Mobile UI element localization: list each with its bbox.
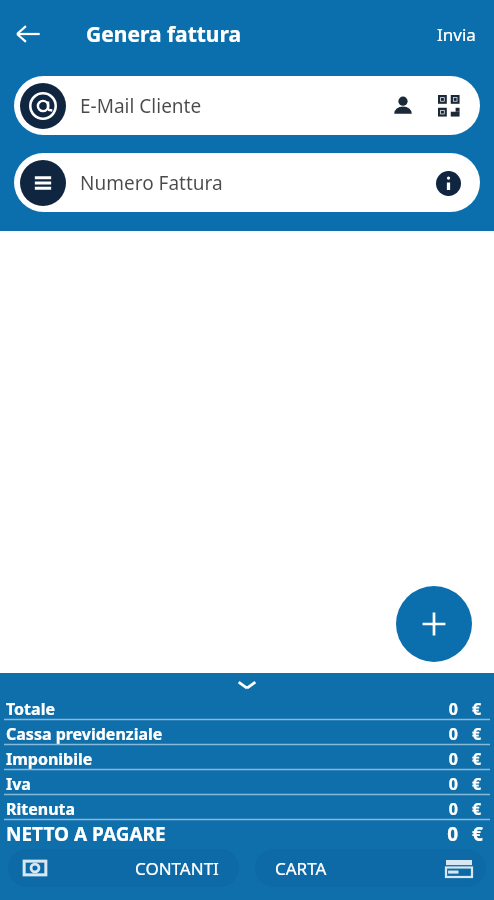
staticText: CONTANTI <box>135 857 219 880</box>
staticText: 0 <box>448 723 458 745</box>
button[interactable]: Add item <box>396 586 472 662</box>
staticText: € <box>472 773 490 795</box>
staticText: € <box>472 748 490 770</box>
staticText: 0 <box>448 748 458 770</box>
button[interactable]: CONTANTI <box>8 849 239 887</box>
staticText: Numero Fattura <box>80 170 223 196</box>
staticText: 0 <box>448 798 458 820</box>
button[interactable]: Numero Fattura <box>14 153 480 212</box>
staticText: Cassa previdenziale <box>6 723 163 745</box>
staticText: € <box>472 698 490 720</box>
staticText: 0 <box>448 698 458 720</box>
button[interactable]: Back <box>0 6 56 62</box>
staticText: Invia <box>437 23 476 46</box>
staticText: NETTO A PAGARE <box>6 821 166 846</box>
staticText: € <box>472 821 490 846</box>
staticText: € <box>472 723 490 745</box>
staticText: E-Mail Cliente <box>80 93 202 119</box>
staticText: CARTA <box>275 857 327 880</box>
staticText: Iva <box>6 773 31 795</box>
button[interactable]: E-Mail Cliente <box>14 76 480 135</box>
staticText: Imponibile <box>6 748 93 770</box>
staticText: Ritenuta <box>6 798 76 820</box>
button[interactable]: Invia <box>419 13 494 56</box>
button[interactable]: Info <box>426 161 470 205</box>
staticText: Totale <box>6 698 55 720</box>
staticText: 0 <box>448 773 458 795</box>
staticText: 0 <box>447 821 458 846</box>
button[interactable]: CARTA <box>255 849 486 887</box>
button[interactable]: Choose contact <box>382 85 424 127</box>
button[interactable]: Scan QR code <box>428 85 470 127</box>
button[interactable]: Collapse summary <box>0 673 494 696</box>
staticText: Genera fattura <box>86 20 242 49</box>
staticText: € <box>472 798 490 820</box>
